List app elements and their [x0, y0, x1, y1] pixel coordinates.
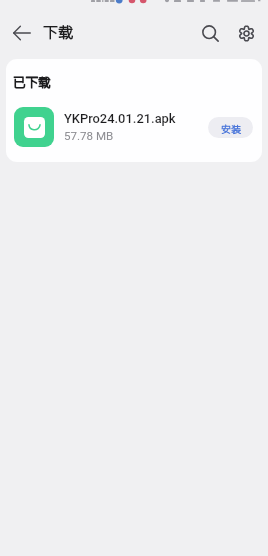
staticText: 下载 [43, 21, 74, 43]
button[interactable]: Search [189, 12, 231, 54]
staticText: 57.78 MB [64, 129, 114, 143]
button[interactable]: Back [1, 12, 43, 54]
staticText: 已下载 [13, 72, 51, 90]
staticText: 已下载 [13, 72, 51, 90]
button[interactable]: Settings [225, 12, 267, 54]
staticText: 下载 [43, 21, 74, 43]
button[interactable]: YKPro24.01.21.apk [6, 107, 262, 147]
staticText: 安装 [221, 121, 241, 135]
staticText: YKPro24.01.21.apk [64, 111, 176, 126]
staticText: 安装 [221, 121, 241, 135]
button[interactable]: 安装 [208, 117, 253, 138]
